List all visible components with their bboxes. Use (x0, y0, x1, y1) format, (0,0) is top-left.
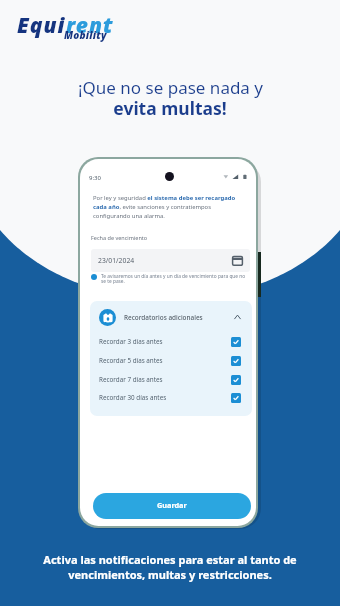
staticText: Guardar (157, 500, 187, 510)
staticText: evita multas! (113, 96, 227, 120)
staticText: Recordar 30 días antes (99, 393, 167, 402)
staticText: rent (66, 11, 114, 40)
other: Contraer (234, 314, 241, 320)
staticText: 23/01/2024 (98, 256, 135, 265)
staticText: Recordar 7 días antes (99, 375, 163, 384)
button[interactable]: Recordatorios adicionales (90, 301, 252, 333)
button[interactable]: Recordar 7 días antes (90, 370, 252, 389)
staticText: Fecha de vencimiento (91, 234, 148, 241)
staticText: Te avisaremos un día antes y un día de v… (101, 273, 249, 285)
staticText: Por ley y seguridad el sistema debe ser … (93, 194, 243, 220)
button[interactable]: Guardar (93, 493, 251, 519)
staticText: ¡Que no se pase nada y (78, 76, 263, 99)
staticText: Equi (17, 11, 66, 40)
button[interactable]: Recordar 30 días antes (90, 388, 252, 407)
staticText: Mobility (64, 28, 107, 42)
other: Elegir fecha (232, 255, 243, 266)
staticText: Recordar 5 días antes (99, 356, 163, 365)
staticText: Recordar 3 días antes (99, 337, 163, 346)
staticText: Recordatorios adicionales (124, 313, 203, 322)
button[interactable]: Recordar 5 días antes (90, 351, 252, 370)
staticText: 9:30 (89, 174, 101, 182)
staticText: Activa las notificaciones para estar al … (16, 552, 324, 582)
button[interactable]: Recordar 3 días antes (90, 332, 252, 351)
button[interactable]: 23/01/2024 (91, 249, 250, 272)
